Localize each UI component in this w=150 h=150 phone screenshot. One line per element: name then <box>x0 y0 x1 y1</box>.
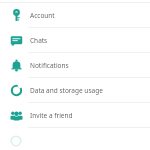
button[interactable]: Chats <box>0 28 150 52</box>
button[interactable]: Help <box>0 128 150 150</box>
button[interactable]: Notifications <box>0 53 150 77</box>
staticText: Data and storage usage <box>30 86 103 95</box>
staticText: Invite a friend <box>30 111 73 120</box>
button[interactable]: Account <box>0 3 150 27</box>
staticText: Notifications <box>30 61 69 70</box>
other: Help <box>10 135 22 147</box>
button[interactable]: Invite a friend <box>0 103 150 127</box>
staticText: Account <box>30 11 55 20</box>
staticText: Chats <box>30 36 48 45</box>
button[interactable]: Data and storage usage <box>0 78 150 102</box>
